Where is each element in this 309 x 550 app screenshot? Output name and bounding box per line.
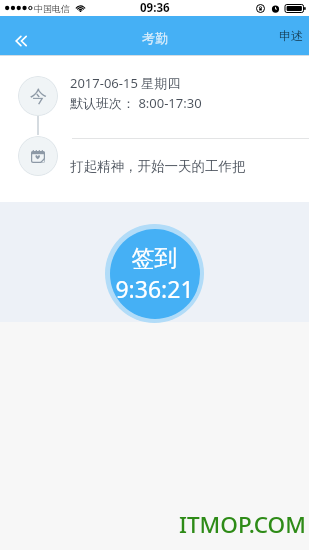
staticText: 打起精神，开始一天的工作把 bbox=[70, 158, 246, 175]
staticText: 默认班次： 8:00-17:30 bbox=[70, 94, 202, 112]
staticText: 2017-06-15 星期四 bbox=[70, 74, 181, 92]
staticText: ITMOP.COM bbox=[179, 509, 306, 540]
staticText: 中国电信 bbox=[34, 3, 70, 14]
button[interactable]: Back bbox=[2, 23, 42, 59]
staticText: 申述 bbox=[279, 28, 303, 43]
staticText: 09:36 bbox=[140, 0, 170, 16]
staticText: 考勤 bbox=[142, 30, 168, 46]
button[interactable]: 签到 bbox=[105, 224, 204, 323]
staticText: 签到 bbox=[105, 244, 204, 273]
staticText: 今 bbox=[30, 86, 47, 107]
button[interactable]: 申述 bbox=[272, 16, 309, 55]
staticText: 9:36:21 bbox=[105, 273, 204, 304]
